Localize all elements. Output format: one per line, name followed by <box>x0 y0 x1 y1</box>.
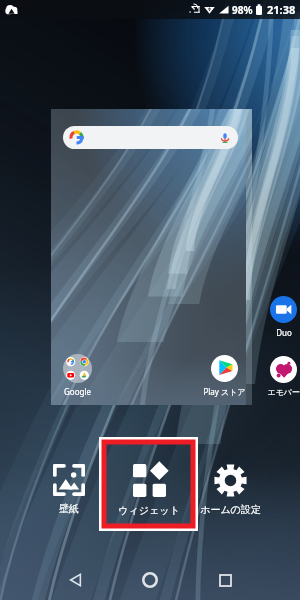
staticText: Play ストア <box>203 386 246 397</box>
staticText: ホームの設定 <box>200 503 261 516</box>
staticText: 98% <box>232 3 253 17</box>
staticText: 壁紙 <box>59 502 79 515</box>
staticText: Duo <box>276 327 292 338</box>
staticText: Google <box>64 386 91 397</box>
button[interactable]: Home <box>130 560 170 600</box>
button[interactable]: Recent apps <box>205 560 245 600</box>
button[interactable]: ホームの設定 <box>194 445 267 523</box>
button[interactable]: ウィジェット <box>102 440 195 528</box>
staticText: ウィジェット <box>118 504 180 517</box>
button[interactable] <box>63 126 238 149</box>
staticText: エモパー <box>267 387 300 397</box>
button[interactable]: 壁紙 <box>32 445 106 523</box>
staticText: 21:38 <box>267 2 296 17</box>
button[interactable]: Back <box>55 560 95 600</box>
